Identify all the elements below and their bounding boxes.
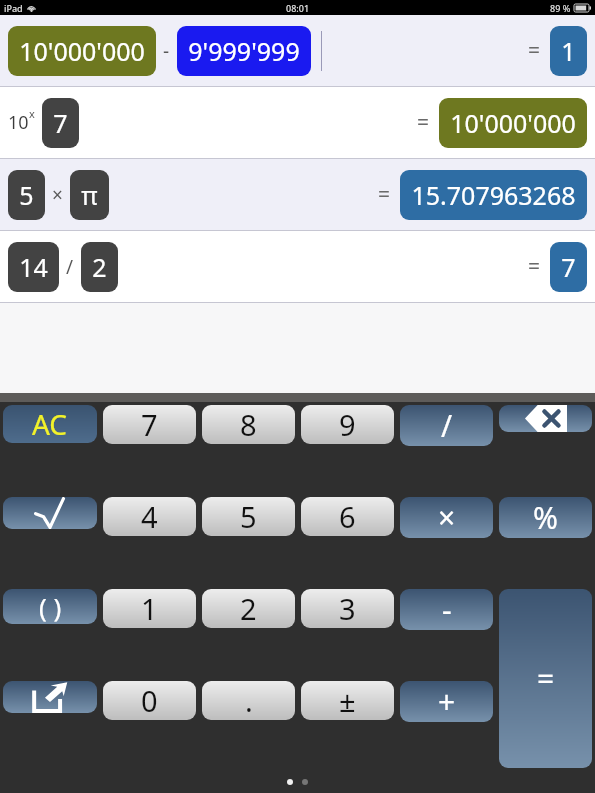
staticText: 10 — [8, 110, 29, 135]
button[interactable]: 2 — [202, 589, 295, 628]
staticText: 89 % — [550, 2, 571, 14]
button[interactable]: = — [499, 589, 592, 768]
staticText: 7 — [53, 106, 68, 140]
staticText: AC — [32, 405, 68, 443]
button[interactable]: 0 — [103, 681, 196, 720]
staticText: x — [29, 106, 35, 121]
staticText: = — [537, 658, 555, 699]
staticText: × — [52, 182, 63, 208]
button[interactable]: - — [400, 589, 493, 630]
staticText: 6 — [339, 497, 356, 536]
staticText: 3 — [339, 589, 356, 628]
button[interactable]: 14 — [8, 242, 59, 292]
button[interactable]: × — [400, 497, 493, 538]
staticText: × — [438, 497, 456, 538]
button[interactable]: 15.707963268 — [400, 170, 587, 220]
button[interactable]: 1 — [103, 589, 196, 628]
button[interactable]: 9 — [301, 405, 394, 444]
staticText: 7 — [561, 250, 576, 284]
button[interactable]: Backspace — [499, 405, 592, 432]
button[interactable]: 7 — [103, 405, 196, 444]
staticText: = — [528, 36, 541, 65]
button[interactable]: 6 — [301, 497, 394, 536]
button[interactable]: + — [400, 681, 493, 722]
staticText: π — [81, 178, 98, 212]
staticText: = — [378, 180, 391, 209]
staticText: iPad — [4, 2, 23, 14]
staticText: - — [442, 589, 452, 630]
button[interactable]: ± — [301, 681, 394, 720]
button[interactable]: Share — [3, 681, 97, 713]
staticText: 2 — [92, 250, 107, 284]
button[interactable]: 4 — [103, 497, 196, 536]
button[interactable]: ( ) — [3, 589, 97, 624]
staticText: ± — [339, 681, 356, 720]
staticText: = — [528, 252, 541, 281]
staticText: 08:01 — [286, 2, 310, 14]
staticText: . — [245, 681, 253, 720]
button[interactable]: Square root — [3, 497, 97, 529]
staticText: 1 — [561, 34, 576, 68]
staticText: 8 — [240, 405, 257, 444]
button[interactable]: . — [202, 681, 295, 720]
staticText: 2 — [240, 589, 257, 628]
staticText: ( ) — [39, 589, 62, 624]
staticText: + — [438, 681, 456, 722]
button[interactable]: 5 — [0, 159, 595, 230]
staticText: / — [66, 254, 74, 280]
staticText: 10'000'000 — [19, 34, 145, 68]
staticText: 14 — [19, 250, 48, 284]
staticText: 9 — [339, 405, 356, 444]
button[interactable]: 10'000'000 — [0, 15, 595, 86]
staticText: / — [441, 405, 453, 446]
button[interactable]: π — [70, 170, 109, 220]
button[interactable]: 5 — [8, 170, 45, 220]
button[interactable]: 7 — [550, 242, 587, 292]
staticText: 10'000'000 — [450, 106, 576, 140]
staticText: - — [163, 38, 170, 64]
button[interactable]: / — [400, 405, 493, 446]
staticText: 15.707963268 — [411, 178, 576, 212]
staticText: 1 — [141, 589, 158, 628]
button[interactable]: AC — [3, 405, 97, 443]
button[interactable]: 10'000'000 — [8, 26, 156, 76]
button[interactable]: 10 — [0, 87, 595, 158]
staticText: 5 — [19, 178, 34, 212]
button[interactable]: % — [499, 497, 592, 538]
staticText: % — [533, 497, 558, 538]
staticText: 0 — [141, 681, 158, 720]
staticText: 5 — [240, 497, 257, 536]
staticText: 7 — [141, 405, 158, 444]
button[interactable]: 7 — [42, 98, 79, 148]
button[interactable]: 10'000'000 — [439, 98, 587, 148]
button[interactable]: 3 — [301, 589, 394, 628]
button[interactable]: 8 — [202, 405, 295, 444]
button[interactable]: 14 — [0, 231, 595, 302]
button[interactable]: 1 — [550, 26, 587, 76]
staticText: 9'999'999 — [188, 34, 300, 68]
staticText: = — [417, 108, 430, 137]
button[interactable]: 5 — [202, 497, 295, 536]
button[interactable]: 9'999'999 — [177, 26, 311, 76]
button[interactable]: 2 — [81, 242, 118, 292]
staticText: 4 — [141, 497, 158, 536]
